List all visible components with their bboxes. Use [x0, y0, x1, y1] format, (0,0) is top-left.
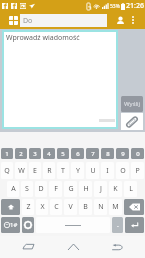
staticText: L: [129, 184, 133, 194]
staticText: X: [40, 202, 45, 212]
button[interactable]: G: [64, 181, 77, 197]
button[interactable]: W: [15, 162, 27, 179]
staticText: 2: [19, 150, 23, 158]
button[interactable]: 2: [15, 148, 27, 159]
button[interactable]: N: [94, 199, 107, 215]
button[interactable]: D: [35, 181, 47, 197]
staticText: 9: [121, 150, 125, 158]
staticText: 0: [136, 150, 140, 158]
staticText: V: [68, 202, 73, 212]
button[interactable]: I: [101, 162, 114, 179]
staticText: I: [106, 166, 109, 176]
button[interactable]: R: [43, 162, 55, 179]
staticText: Y: [76, 166, 80, 176]
button[interactable]: 7: [86, 148, 99, 159]
button[interactable]: S: [21, 181, 33, 197]
staticText: O: [120, 166, 126, 176]
button[interactable]: X: [36, 199, 48, 215]
staticText: Z: [26, 202, 31, 212]
button[interactable]: L: [124, 181, 137, 197]
staticText: G: [68, 184, 74, 194]
button[interactable]: Contacts: [113, 11, 127, 29]
button[interactable]: H: [79, 181, 92, 197]
staticText: P: [135, 166, 140, 176]
staticText: D: [38, 184, 44, 194]
staticText: J: [100, 184, 102, 194]
button[interactable]: P: [131, 162, 144, 179]
button[interactable]: B: [79, 199, 92, 215]
staticText: M: [112, 202, 119, 212]
staticText: R: [47, 166, 52, 176]
button[interactable]: .: [112, 217, 123, 233]
staticText: 7: [91, 150, 95, 158]
button[interactable]: Wprowadź wiadomość: [4, 32, 116, 127]
button[interactable]: Settings: [22, 217, 34, 233]
button[interactable]: Apps: [9, 16, 18, 25]
button[interactable]: Shift: [1, 199, 20, 215]
staticText: H: [83, 184, 89, 194]
staticText: Wyślij: [124, 100, 141, 108]
button[interactable]: Do: [20, 14, 107, 27]
button[interactable]: 9: [116, 148, 129, 159]
staticText: 4: [47, 150, 51, 158]
staticText: 21:26: [126, 1, 144, 11]
button[interactable]: Home: [56, 236, 90, 258]
button[interactable]: T: [57, 162, 69, 179]
button[interactable]: F: [49, 181, 62, 197]
staticText: W: [18, 166, 25, 176]
button[interactable]: Q: [1, 162, 13, 179]
staticText: .: [117, 220, 119, 230]
button[interactable]: 1: [1, 148, 13, 159]
staticText: Do: [23, 16, 33, 26]
button[interactable]: Y: [71, 162, 84, 179]
staticText: N: [98, 202, 104, 212]
staticText: Q: [4, 166, 10, 176]
button[interactable]: 6: [71, 148, 84, 159]
staticText: 53%: [110, 3, 120, 10]
button[interactable]: Wyślij: [121, 96, 143, 112]
button[interactable]: Z: [22, 199, 34, 215]
button[interactable]: Backspace: [124, 199, 144, 215]
staticText: K: [113, 184, 118, 194]
button[interactable]: 4: [43, 148, 55, 159]
button[interactable]: K: [109, 181, 122, 197]
button[interactable]: M: [109, 199, 122, 215]
staticText: 1: [5, 150, 9, 158]
staticText: 3: [33, 150, 37, 158]
button[interactable]: V: [64, 199, 77, 215]
staticText: A: [11, 184, 16, 194]
button[interactable]: A: [7, 181, 19, 197]
staticText: T: [61, 166, 65, 176]
button[interactable]: 3: [29, 148, 41, 159]
button[interactable]: 0: [131, 148, 144, 159]
button[interactable]: Recent apps: [11, 236, 45, 258]
staticText: 1#: [10, 221, 18, 229]
staticText: Wprowadź wiadomość: [6, 33, 80, 43]
staticText: 8: [106, 150, 110, 158]
button[interactable]: C: [50, 199, 62, 215]
button[interactable]: Symbols: [1, 217, 20, 233]
button[interactable]: Attach file: [121, 113, 143, 130]
button[interactable]: U: [86, 162, 99, 179]
button[interactable]: [36, 217, 110, 233]
button[interactable]: 5: [57, 148, 69, 159]
staticText: 6: [76, 150, 80, 158]
button[interactable]: Enter: [125, 217, 144, 233]
staticText: U: [90, 166, 96, 176]
staticText: B: [83, 202, 88, 212]
button[interactable]: More options: [127, 11, 139, 29]
button[interactable]: Back: [100, 236, 134, 258]
staticText: S: [25, 184, 29, 194]
staticText: F: [54, 184, 58, 194]
button[interactable]: 8: [101, 148, 114, 159]
staticText: C: [54, 202, 59, 212]
staticText: 5: [61, 150, 65, 158]
staticText: E: [33, 166, 37, 176]
button[interactable]: O: [116, 162, 129, 179]
button[interactable]: J: [94, 181, 107, 197]
button[interactable]: E: [29, 162, 41, 179]
